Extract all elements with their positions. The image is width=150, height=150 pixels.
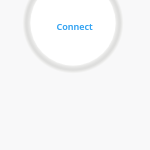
button[interactable]: Connect — [30, 0, 115, 65]
staticText: Connect — [56, 20, 93, 32]
